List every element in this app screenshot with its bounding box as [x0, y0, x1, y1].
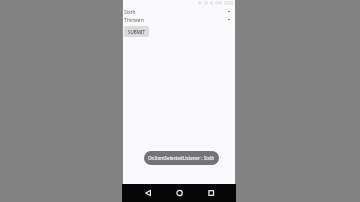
button[interactable] [122, 184, 160, 202]
button[interactable]: Sixth [122, 8, 236, 16]
button[interactable]: SUBMIT [124, 26, 149, 37]
button[interactable]: Thirteen [122, 16, 236, 24]
staticText: Sixth [124, 9, 136, 16]
staticText: OnItemSelectedListener : Sixth [148, 155, 215, 161]
staticText: Thirteen [124, 17, 144, 24]
button[interactable] [160, 184, 198, 202]
staticText: SUBMIT [128, 29, 145, 35]
button[interactable] [198, 184, 236, 202]
